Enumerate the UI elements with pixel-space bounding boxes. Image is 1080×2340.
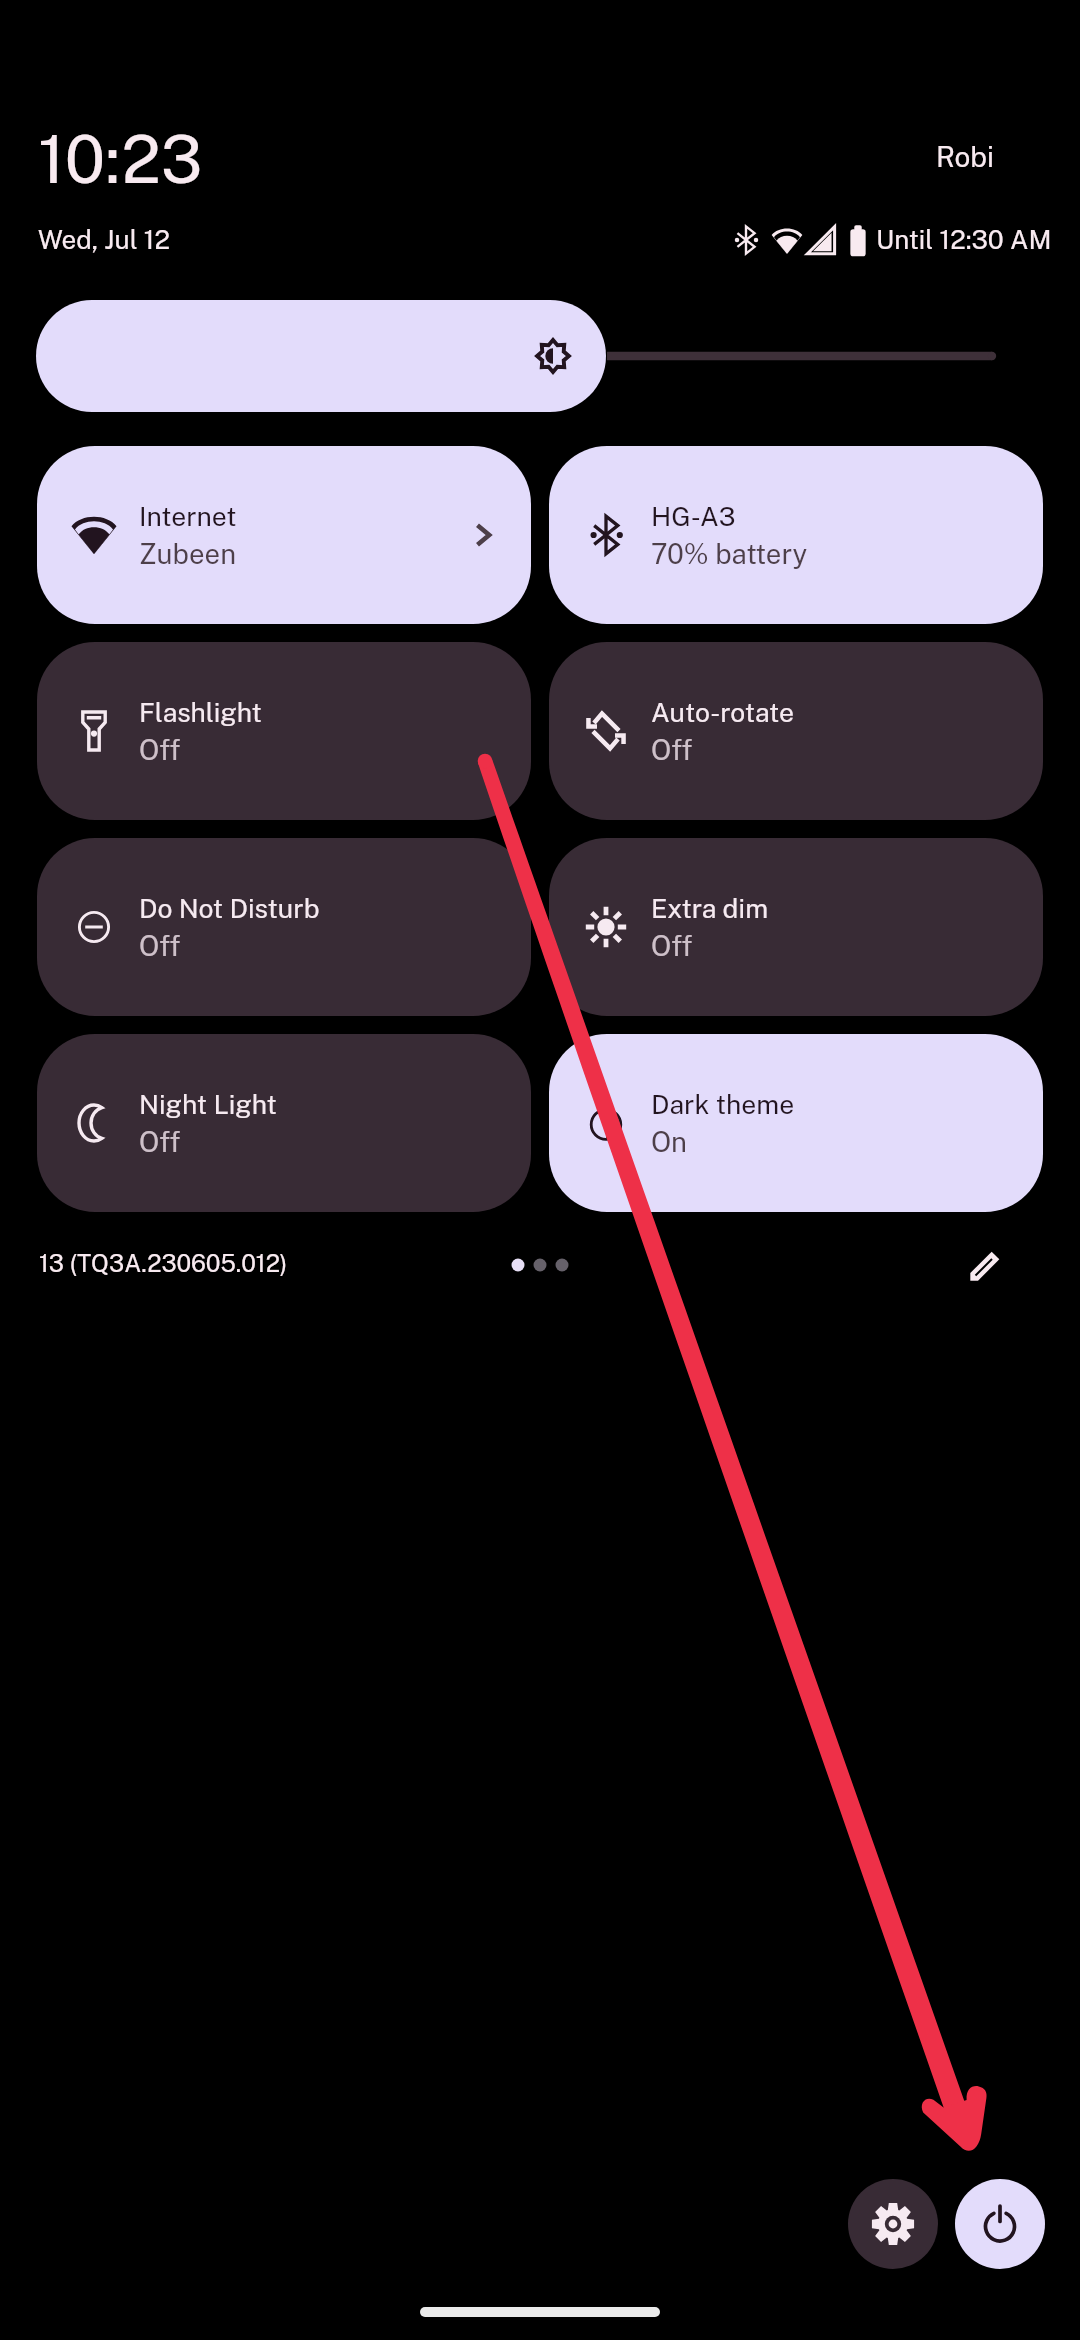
button[interactable]: Settings <box>848 2179 938 2269</box>
staticText: Off <box>139 1126 181 1158</box>
button[interactable]: Do Not Disturb <box>37 838 531 1016</box>
staticText: Off <box>139 734 181 766</box>
staticText: Zubeen <box>139 538 236 570</box>
button[interactable]: Internet <box>37 446 531 624</box>
button[interactable]: Edit tiles <box>951 1230 1021 1300</box>
staticText: Auto-rotate <box>651 697 794 728</box>
staticText: Wed, Jul 12 <box>38 224 170 255</box>
staticText: Until 12:30 AM <box>876 224 1052 255</box>
button[interactable]: Dark theme <box>549 1034 1043 1212</box>
button[interactable]: Auto-rotate <box>549 642 1043 820</box>
button[interactable]: HG-A3 <box>549 446 1043 624</box>
staticText: Off <box>139 930 181 962</box>
staticText: 13 (TQ3A.230605.012) <box>39 1249 288 1277</box>
staticText: Night Light <box>139 1089 277 1120</box>
button[interactable] <box>36 300 1044 412</box>
staticText: 70% battery <box>651 538 808 570</box>
staticText: 10:23 <box>38 120 203 198</box>
staticText: Internet <box>139 501 237 532</box>
staticText: Flashlight <box>139 697 262 728</box>
button[interactable]: Night Light <box>37 1034 531 1212</box>
staticText: Off <box>651 930 693 962</box>
staticText: Do Not Disturb <box>139 893 320 924</box>
staticText: On <box>651 1126 687 1158</box>
staticText: Robi <box>936 140 994 173</box>
staticText: Off <box>651 734 693 766</box>
staticText: Extra dim <box>651 893 769 924</box>
staticText: HG-A3 <box>651 501 736 532</box>
staticText: Dark theme <box>651 1089 795 1120</box>
button[interactable]: Flashlight <box>37 642 531 820</box>
button[interactable]: Power <box>955 2179 1045 2269</box>
button[interactable]: Extra dim <box>549 838 1043 1016</box>
